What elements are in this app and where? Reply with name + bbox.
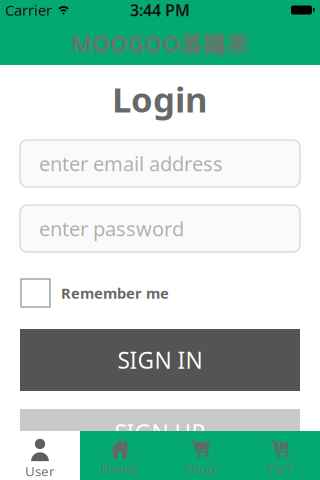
staticText: MOOGOO慕爾果 [71, 29, 249, 59]
staticText: Remember me [61, 283, 169, 303]
staticText: Login [112, 76, 208, 122]
staticText: enter email address [39, 150, 223, 177]
staticText: User [25, 462, 55, 480]
staticText: SIGN IN [117, 345, 202, 375]
staticText: enter password [39, 215, 184, 242]
staticText: Cart [267, 460, 293, 477]
staticText: Carrier [5, 0, 52, 20]
staticText: Shop [184, 460, 215, 477]
staticText: 3:44 PM [130, 0, 190, 21]
staticText: SIGN UP [114, 417, 205, 447]
staticText: Home [101, 460, 139, 477]
